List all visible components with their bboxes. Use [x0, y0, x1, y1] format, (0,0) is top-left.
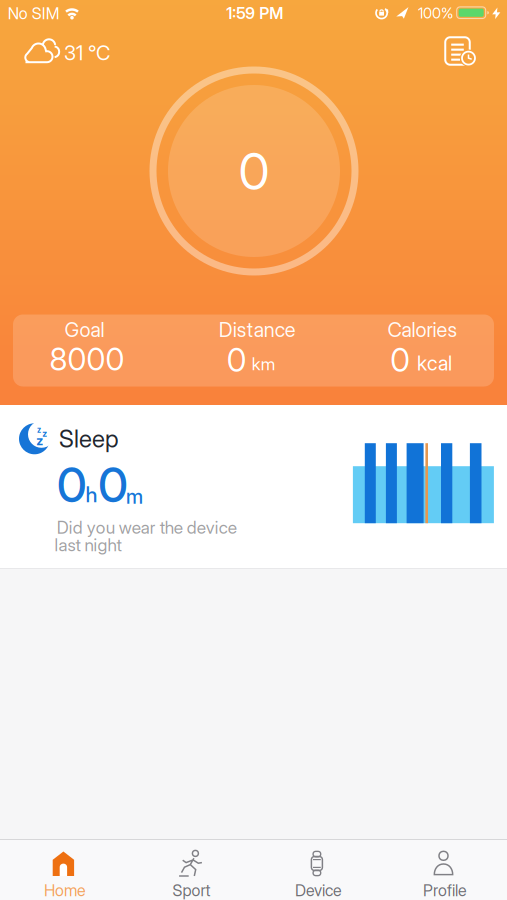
staticText: Device — [295, 881, 342, 900]
button[interactable]: History records — [445, 37, 478, 67]
button[interactable]: Home — [0, 839, 126, 900]
staticText: 0 — [98, 456, 128, 513]
staticText: m — [126, 485, 143, 508]
staticText: Sport — [173, 881, 211, 900]
staticText: kcal — [417, 351, 452, 375]
staticText: 0 — [227, 341, 247, 379]
staticText: z — [36, 433, 43, 448]
button[interactable]: Sport — [127, 839, 253, 900]
staticText: 100% — [418, 4, 453, 22]
staticText: 0 — [57, 456, 87, 513]
staticText: Home — [44, 881, 86, 900]
staticText: 0 — [238, 141, 269, 201]
staticText: 1:59 PM — [226, 4, 283, 23]
staticText: 31 °C — [64, 41, 110, 65]
staticText: z — [37, 425, 41, 434]
staticText: Calories — [387, 318, 456, 342]
button[interactable]: Profile — [381, 839, 507, 900]
button[interactable]: Device — [254, 839, 380, 900]
staticText: z — [42, 428, 47, 439]
staticText: Did you wear the device — [57, 517, 237, 538]
staticText: 0 — [390, 341, 410, 379]
staticText: 8000 — [49, 341, 124, 377]
staticText: Profile — [423, 881, 467, 900]
staticText: No SIM — [8, 4, 60, 23]
staticText: Distance — [219, 318, 296, 342]
staticText: last night — [54, 535, 121, 555]
staticText: km — [252, 354, 276, 374]
staticText: h — [85, 482, 97, 507]
staticText: Sleep — [59, 425, 119, 453]
staticText: Goal — [64, 318, 104, 342]
